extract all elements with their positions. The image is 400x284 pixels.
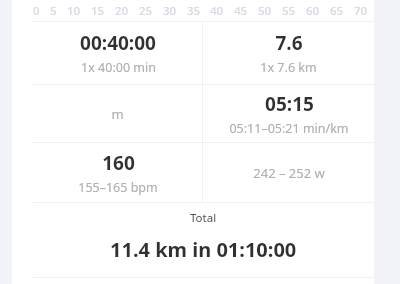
staticText: 40 [210, 3, 224, 19]
staticText: 155–165 bpm [78, 179, 158, 196]
staticText: 11.4 km in 01:10:00 [110, 236, 297, 263]
staticText: 45 [234, 3, 248, 19]
staticText: 15 [91, 3, 105, 19]
staticText: 1x 7.6 km [260, 59, 317, 76]
staticText: 0 [33, 3, 40, 19]
staticText: 65 [330, 3, 344, 19]
staticText: 20 [115, 3, 129, 19]
staticText: 160 [102, 150, 135, 176]
button[interactable]: m [33, 85, 202, 142]
staticText: 05:15 [265, 91, 314, 117]
staticText: 1x 40:00 min [81, 59, 156, 76]
staticText: 5 [50, 3, 57, 19]
staticText: 7.6 [275, 30, 303, 56]
button[interactable]: 7.6 [203, 22, 374, 84]
button[interactable]: 00:40:00 [33, 22, 202, 84]
button[interactable]: 160 [33, 143, 202, 202]
staticText: 50 [258, 3, 272, 19]
staticText: 242 – 252 w [253, 164, 325, 182]
staticText: 35 [187, 3, 201, 19]
staticText: m [111, 105, 124, 123]
button[interactable]: 05:15 [203, 85, 374, 142]
staticText: Total [190, 210, 217, 226]
staticText: 70 [354, 3, 368, 19]
staticText: 00:40:00 [80, 30, 156, 56]
staticText: 05:11–05:21 min/km [229, 120, 349, 137]
staticText: 25 [139, 3, 153, 19]
staticText: 10 [67, 3, 81, 19]
staticText: 30 [163, 3, 177, 19]
staticText: 60 [306, 3, 320, 19]
staticText: 55 [282, 3, 296, 19]
button[interactable]: 242 – 252 w [203, 143, 374, 202]
